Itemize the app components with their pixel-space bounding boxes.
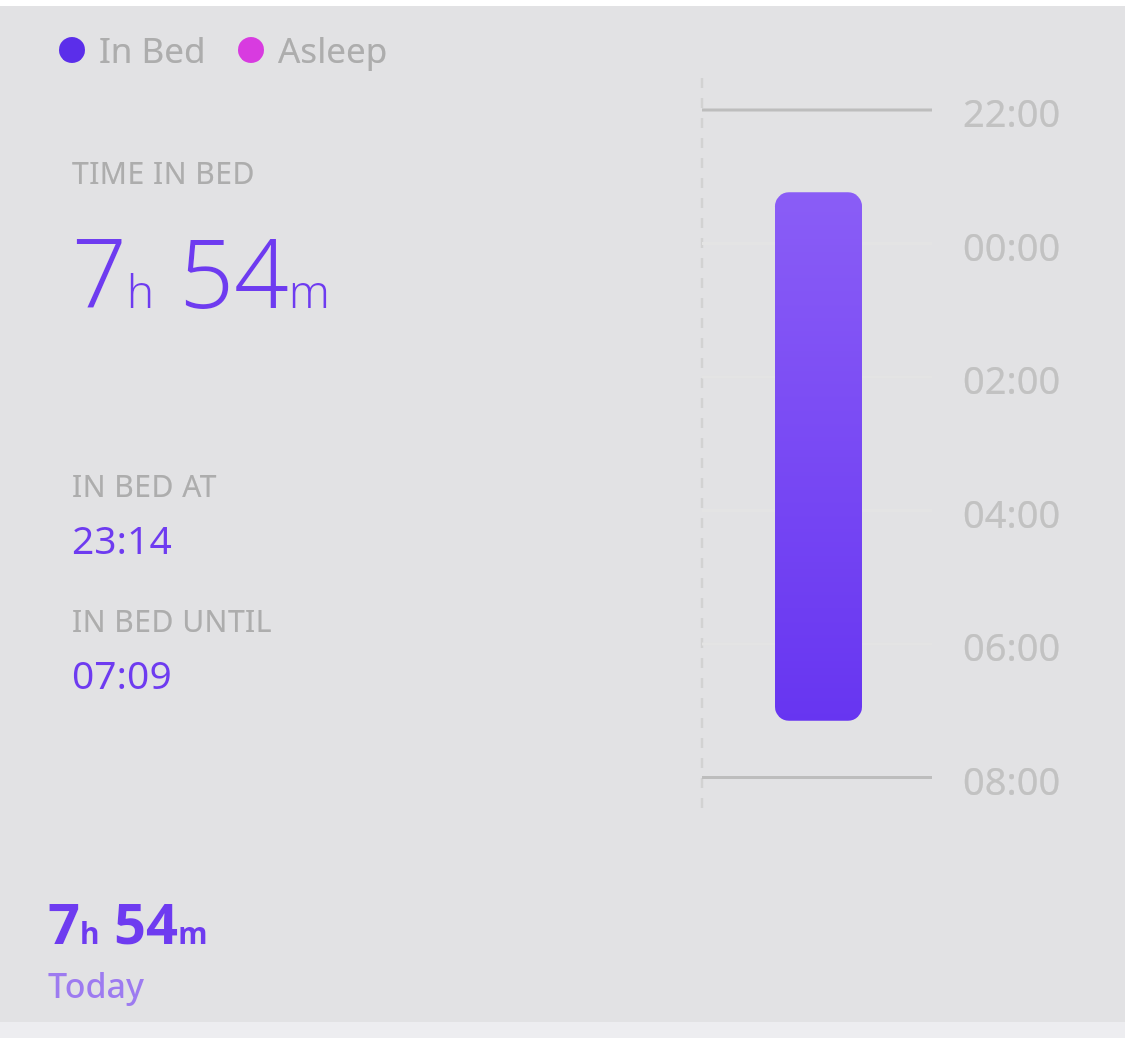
staticText: IN BED UNTIL — [72, 600, 272, 641]
staticText: 06:00 — [963, 620, 1061, 672]
staticText: In Bed — [99, 26, 206, 74]
staticText: 23:14 — [72, 512, 172, 565]
staticText: 00:00 — [963, 220, 1061, 272]
staticText: Asleep — [278, 26, 388, 74]
staticText: TIME IN BED — [72, 152, 255, 193]
staticText: 22:00 — [963, 86, 1061, 138]
staticText: 7h 54m — [48, 884, 208, 960]
staticText: IN BED AT — [72, 465, 217, 506]
staticText: Today — [48, 962, 144, 1008]
staticText: 7h 54m — [72, 205, 330, 336]
button[interactable]: 7h 54m — [48, 884, 208, 1008]
other: Sleep time in bed chart — [690, 78, 950, 818]
staticText: 02:00 — [963, 353, 1061, 405]
staticText: 04:00 — [963, 487, 1061, 539]
staticText: 07:09 — [72, 647, 172, 700]
button[interactable]: In Bed — [55, 22, 392, 78]
staticText: 08:00 — [963, 754, 1061, 806]
